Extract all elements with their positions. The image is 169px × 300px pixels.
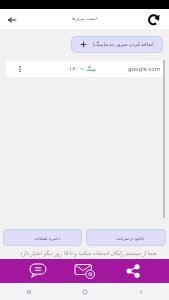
button[interactable]: Back: [4, 12, 19, 27]
button[interactable]: More options: [6, 61, 163, 77]
button[interactable]: اضافه کردن سرور جدید(پینگ): [71, 36, 163, 53]
button[interactable]: Refresh: [146, 12, 160, 26]
button[interactable]: Recent apps: [0, 283, 57, 300]
staticText: دانلود و سرعت: [116, 235, 145, 241]
staticText: پینگ = ۱۳۰: [69, 65, 96, 73]
button[interactable]: Share: [109, 259, 157, 283]
button[interactable]: دانلود و سرعت: [86, 229, 166, 246]
button[interactable]: Home: [57, 283, 113, 300]
button[interactable]: Chat: [14, 259, 61, 283]
button[interactable]: Mail: [61, 259, 109, 283]
button[interactable]: Back: [113, 283, 169, 300]
button[interactable]: More options: [15, 64, 25, 74]
staticText: شما از سیستم رایگان استفاده میکنید و تا …: [4, 249, 169, 256]
staticText: اضافه کردن سرور جدید(پینگ): [93, 41, 154, 48]
staticText: google.com: [128, 65, 161, 73]
button[interactable]: ذخیره عملیات: [3, 229, 82, 246]
staticText: ذخیره عملیات: [34, 235, 60, 241]
staticText: لیست سرورها: [72, 16, 97, 22]
